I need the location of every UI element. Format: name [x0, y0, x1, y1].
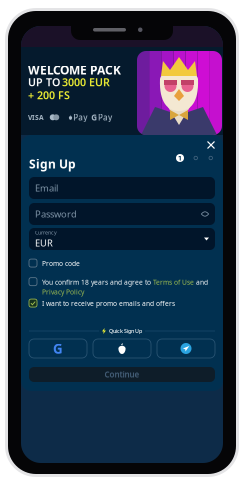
- staticText: 3000 EUR: [62, 75, 110, 89]
- staticText: Pay: [73, 112, 87, 123]
- staticText: Quick Sign Up: [109, 327, 142, 335]
- staticText: EUR: [35, 237, 53, 249]
- button[interactable]: Password: [29, 203, 215, 225]
- staticText: You confirm 18 years and agree to: [42, 278, 153, 286]
- staticText: G: [53, 340, 63, 357]
- staticText: Pay: [98, 112, 112, 123]
- button[interactable]: Promo code: [29, 259, 215, 268]
- staticText: 1: [178, 154, 182, 162]
- button[interactable]: Close: [205, 139, 217, 151]
- staticText: G: [91, 112, 97, 123]
- staticText: Terms of Use: [153, 278, 194, 286]
- button[interactable]: Currency: [29, 228, 215, 250]
- button[interactable]: Continue: [29, 367, 215, 382]
- staticText: VISA: [28, 113, 44, 122]
- staticText: Sign Up: [29, 156, 76, 172]
- staticText: I want to receive promo emails and offer…: [42, 299, 175, 308]
- button[interactable]: Sign up with Google: [29, 339, 87, 358]
- staticText: WELCOME PACK: [28, 62, 121, 78]
- staticText: Password: [35, 208, 77, 220]
- staticText: Continue: [104, 369, 139, 380]
- button[interactable]: I want to receive promo emails and offer…: [29, 299, 215, 308]
- staticText: Promo code: [42, 259, 80, 268]
- staticText: and: [194, 278, 208, 286]
- staticText: Privacy Policy: [42, 287, 84, 296]
- staticText: UP TO: [28, 75, 60, 89]
- button[interactable]: Sign up with Apple: [93, 339, 151, 358]
- button[interactable]: Sign up with Telegram: [157, 339, 215, 358]
- button[interactable]: Email: [29, 177, 215, 199]
- button[interactable]: You confirm 18 years and agree to: [29, 278, 215, 296]
- staticText: Currency: [35, 229, 57, 236]
- staticText: + 200 FS: [28, 88, 70, 102]
- staticText: Email: [35, 182, 58, 194]
